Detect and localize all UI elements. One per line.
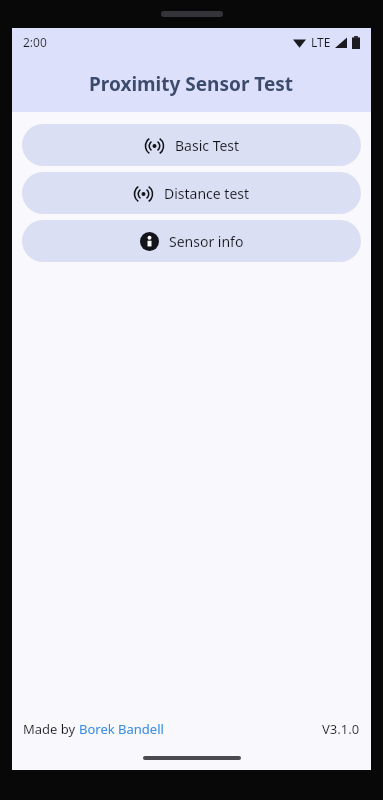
staticText: Distance test [164,184,250,203]
staticText: Made by [23,720,79,738]
button[interactable]: Proximity sensor [22,172,361,214]
other: Information [140,232,159,251]
other: Proximity sensor [133,186,154,202]
staticText: Sensor info [169,232,244,251]
staticText: Borek Bandell [79,720,164,738]
staticText: 2:00 [23,34,47,50]
staticText: Proximity Sensor Test [89,71,294,97]
staticText: V3.1.0 [322,720,360,738]
button[interactable]: Information [22,220,361,262]
staticText: Basic Test [175,136,240,155]
staticText: LTE [311,34,331,50]
other: Proximity sensor [144,138,165,154]
button[interactable]: Borek Bandell [79,720,164,738]
button[interactable]: Proximity sensor [22,124,361,166]
